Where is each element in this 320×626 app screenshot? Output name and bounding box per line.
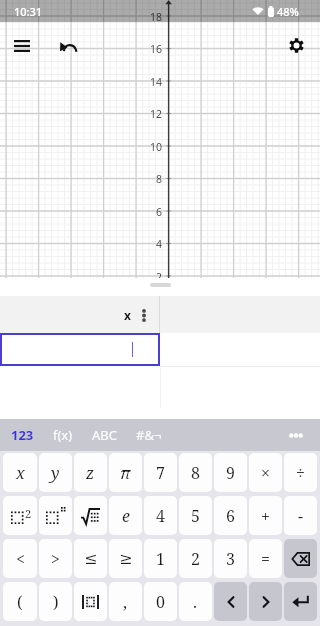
staticText: , [123, 591, 128, 613]
staticText: f(x) [53, 426, 73, 444]
staticText: 1 [156, 548, 165, 570]
staticText: 14 [150, 75, 163, 89]
button[interactable]: × [249, 453, 282, 492]
button[interactable]: ABC [88, 420, 121, 450]
staticText: 6 [156, 205, 163, 219]
staticText: 7 [156, 462, 165, 484]
button[interactable]: y [39, 453, 72, 492]
staticText: 5 [191, 505, 200, 527]
staticText: ÷ [296, 462, 305, 484]
button[interactable]: ) [39, 582, 72, 621]
staticText: e [122, 505, 130, 527]
button[interactable]: Undo [52, 30, 84, 62]
staticText: + [261, 505, 270, 527]
button[interactable]: Square [3, 496, 37, 535]
staticText: 123 [11, 426, 34, 444]
button[interactable]: . [179, 582, 212, 621]
staticText: 48% [277, 4, 299, 19]
button[interactable]: π [109, 453, 142, 492]
button[interactable]: < [3, 539, 37, 578]
button[interactable]: 8 [179, 453, 212, 492]
button[interactable]: 2 [179, 539, 212, 578]
staticText: = [261, 548, 270, 570]
button[interactable]: 4 [144, 496, 177, 535]
button[interactable]: 7 [144, 453, 177, 492]
staticText: 10 [150, 140, 163, 154]
button[interactable]: + [249, 496, 282, 535]
button[interactable]: f(x) [49, 420, 77, 450]
button[interactable]: e [109, 496, 142, 535]
button[interactable]: , [109, 582, 142, 621]
staticText: 2 [25, 506, 32, 521]
button[interactable]: = [249, 539, 282, 578]
staticText: - [298, 505, 303, 527]
button[interactable]: 3 [214, 539, 247, 578]
staticText: y [51, 462, 60, 484]
button[interactable]: More keyboard options [281, 420, 311, 450]
staticText: 9 [226, 462, 235, 484]
staticText: π [120, 462, 131, 484]
button[interactable]: 9 [214, 453, 247, 492]
button[interactable]: ≤ [74, 539, 107, 578]
staticText: ( [17, 591, 23, 613]
staticText: 18 [150, 10, 163, 24]
button[interactable]: 0 [144, 582, 177, 621]
button[interactable]: 1 [144, 539, 177, 578]
button[interactable]: Backspace [284, 539, 317, 578]
staticText: 2 [156, 270, 163, 284]
staticText: 16 [150, 42, 163, 56]
staticText: 4 [156, 237, 163, 251]
button[interactable]: Menu [6, 30, 38, 62]
staticText: . [193, 591, 198, 613]
staticText: 8 [156, 172, 163, 186]
button[interactable]: Square root [74, 496, 107, 535]
button[interactable]: > [39, 539, 72, 578]
staticText: ) [53, 591, 59, 613]
button[interactable]: 5 [179, 496, 212, 535]
staticText: #&¬ [136, 426, 162, 444]
staticText: 10:31 [14, 4, 43, 19]
staticText: 0 [156, 591, 165, 613]
button[interactable]: ÷ [284, 453, 317, 492]
button[interactable]: ≥ [109, 539, 142, 578]
button[interactable]: Power [39, 496, 72, 535]
button[interactable]: Absolute value [74, 582, 107, 621]
button[interactable]: Move left [214, 582, 247, 621]
button[interactable]: - [284, 496, 317, 535]
staticText: 6 [226, 505, 235, 527]
button[interactable]: #&¬ [132, 420, 166, 450]
button[interactable]: x [3, 453, 37, 492]
button[interactable]: More options [136, 301, 152, 329]
button[interactable]: Settings [280, 29, 312, 61]
staticText: ≥ [119, 549, 133, 568]
button[interactable]: ( [3, 582, 37, 621]
staticText: × [261, 462, 270, 484]
staticText: 2 [191, 548, 200, 570]
staticText: < [16, 548, 25, 570]
button[interactable]: Move right [249, 582, 282, 621]
staticText: > [51, 548, 60, 570]
staticText: ABC [92, 426, 117, 444]
staticText: 12 [150, 107, 163, 121]
button[interactable]: 6 [214, 496, 247, 535]
staticText: ≤ [84, 549, 98, 568]
button[interactable]: Enter [284, 582, 317, 621]
staticText: x [16, 462, 25, 484]
staticText: 3 [226, 548, 235, 570]
button[interactable]: z [74, 453, 107, 492]
button[interactable] [0, 333, 160, 366]
staticText: 8 [191, 462, 200, 484]
staticText: z [86, 462, 95, 484]
staticText: 4 [156, 505, 165, 527]
button[interactable]: 123 [7, 420, 38, 450]
staticText: x [124, 307, 131, 323]
